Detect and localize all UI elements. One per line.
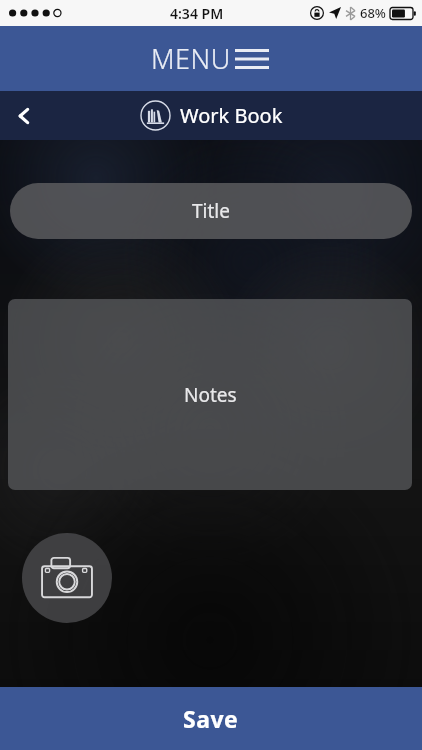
button[interactable]: Save (0, 687, 422, 750)
button[interactable]: Take photo (22, 533, 112, 623)
staticText: Work Book (180, 102, 283, 129)
staticText: Title (192, 198, 230, 224)
button[interactable]: Notes (8, 299, 412, 490)
staticText: Save (183, 703, 239, 734)
button[interactable]: Back (0, 91, 50, 140)
staticText: 68% (360, 4, 386, 22)
staticText: MENU (151, 40, 231, 77)
button[interactable]: Title (10, 183, 412, 239)
staticText: Notes (184, 382, 237, 408)
staticText: 4:34 PM (170, 4, 224, 23)
button[interactable]: MENU (0, 26, 422, 91)
